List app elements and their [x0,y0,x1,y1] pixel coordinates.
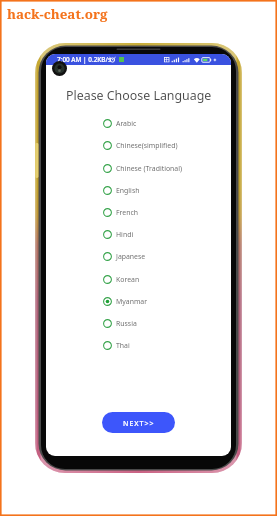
staticText: Chinese(simplified) [116,141,178,150]
button[interactable]: NEXT>> [102,412,175,433]
staticText: English [116,186,140,195]
button[interactable]: Japanese [46,245,231,267]
staticText: Myanmar [116,297,148,306]
button[interactable]: English [46,179,231,201]
button[interactable]: Myanmar [46,290,231,312]
staticText: Chinese (Traditional) [116,164,183,173]
staticText: Japanese [116,252,146,261]
staticText: Russia [116,319,137,328]
staticText: Hindi [116,230,134,239]
button[interactable]: Chinese (Traditional) [46,157,231,179]
staticText: 7:00 AM | 0.2KB/s [57,55,112,64]
staticText: French [116,208,138,217]
staticText: Korean [116,275,140,284]
staticText: Thai [116,341,130,350]
button[interactable]: Arabic [46,112,231,134]
staticText: Please Choose Language [66,87,212,104]
button[interactable]: Russia [46,312,231,334]
button[interactable]: Hindi [46,223,231,245]
button[interactable]: Chinese(simplified) [46,134,231,156]
button[interactable]: Korean [46,268,231,290]
staticText: hack-cheat.org [7,5,108,23]
button[interactable]: French [46,201,231,223]
staticText: Arabic [116,119,137,128]
button[interactable]: Thai [46,334,231,356]
staticText: NEXT>> [123,419,155,429]
